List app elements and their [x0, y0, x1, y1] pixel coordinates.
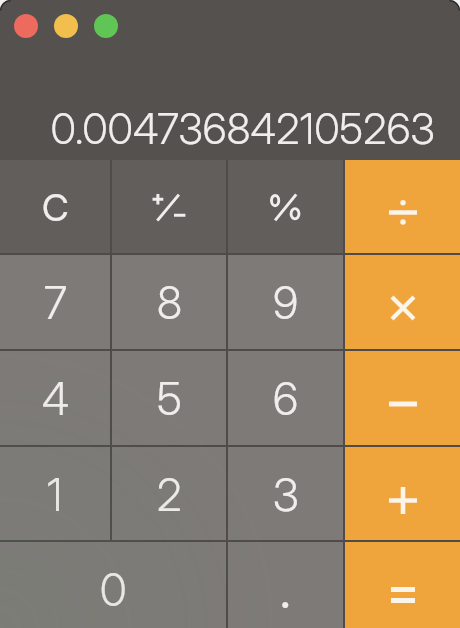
- button[interactable]: Minimize window: [54, 14, 78, 38]
- button[interactable]: Six: [228, 351, 343, 445]
- button[interactable]: Two: [112, 447, 226, 540]
- staticText: 1: [47, 468, 63, 522]
- button[interactable]: Close window: [14, 14, 38, 38]
- staticText: 7: [44, 276, 67, 330]
- staticText: 9: [273, 276, 299, 330]
- staticText: 3: [273, 468, 299, 522]
- staticText: 0: [100, 563, 127, 617]
- button[interactable]: Three: [228, 447, 343, 540]
- staticText: .: [280, 561, 291, 619]
- button[interactable]: Zero: [0, 542, 226, 628]
- button[interactable]: Subtract: [345, 351, 460, 445]
- staticText: 0.004736842105263: [50, 103, 435, 154]
- staticText: C: [42, 185, 69, 230]
- button[interactable]: Multiply: [345, 255, 460, 349]
- button[interactable]: Percent: [228, 160, 343, 253]
- button[interactable]: Equals: [345, 542, 460, 628]
- button[interactable]: Zoom window: [94, 14, 118, 38]
- staticText: 2: [157, 468, 182, 522]
- staticText: 4: [42, 372, 69, 426]
- button[interactable]: Clear: [0, 160, 110, 253]
- button[interactable]: Five: [112, 351, 226, 445]
- button[interactable]: Eight: [112, 255, 226, 349]
- staticText: 8: [157, 276, 182, 330]
- button[interactable]: Decimal point: [228, 542, 343, 628]
- button[interactable]: Nine: [228, 255, 343, 349]
- button[interactable]: Add: [345, 447, 460, 540]
- button[interactable]: Four: [0, 351, 110, 445]
- button[interactable]: Plus minus sign: [112, 160, 226, 253]
- button[interactable]: Divide: [345, 160, 460, 253]
- staticText: 6: [273, 372, 299, 426]
- button[interactable]: Seven: [0, 255, 110, 349]
- staticText: 5: [157, 372, 182, 426]
- button[interactable]: One: [0, 447, 110, 540]
